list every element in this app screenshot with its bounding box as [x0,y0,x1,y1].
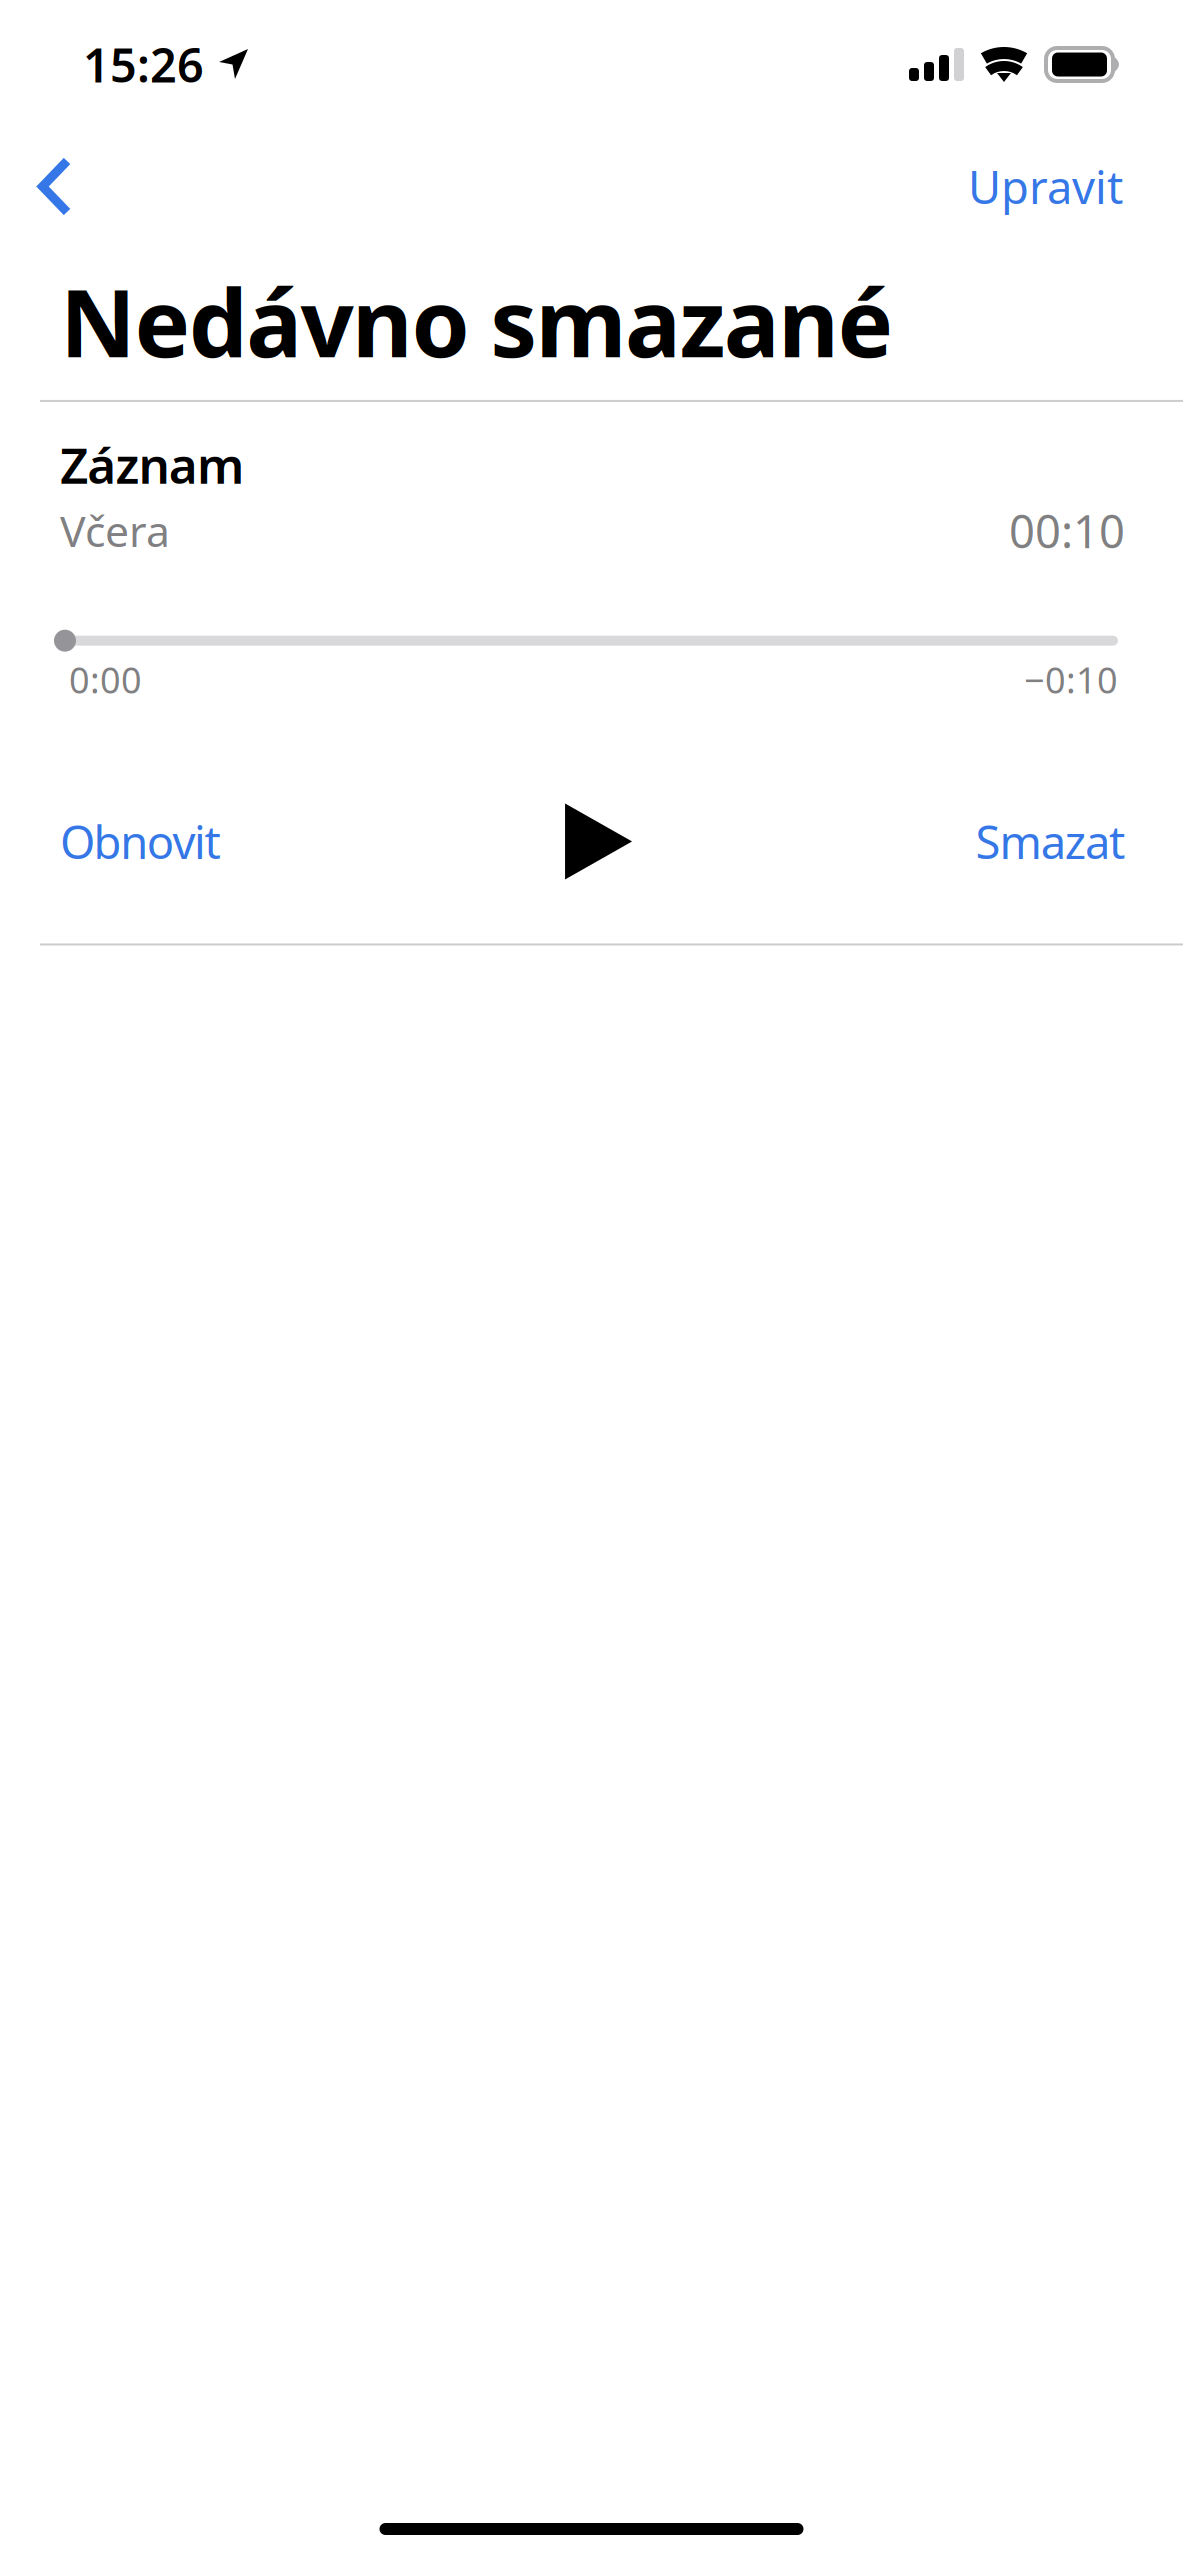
button[interactable]: Smazat [975,799,1125,883]
button[interactable]: Obnovit [60,799,221,883]
staticText: −0:10 [1024,656,1118,703]
staticText: 0:00 [69,656,142,703]
button[interactable]: Play [562,799,634,883]
staticText: Záznam [60,432,244,497]
button[interactable]: Záznam [60,432,1125,561]
button[interactable]: Back [0,134,117,238]
staticText: Včera [60,502,170,559]
staticText: Smazat [975,811,1125,872]
staticText: 15:26 [83,33,204,95]
button[interactable]: Upravit [928,134,1183,239]
staticText: Obnovit [60,811,221,872]
staticText: Upravit [968,156,1123,217]
staticText: 00:10 [1009,500,1125,561]
staticText: Nedávno smazané [60,259,894,383]
